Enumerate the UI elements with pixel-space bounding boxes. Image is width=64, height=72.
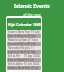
staticText: Day of Ashura [8, 34, 27, 38]
staticText: 27 Sept 2023 [28, 38, 40, 42]
staticText: Islamic Events [0, 3, 64, 10]
staticText: Day of Arafah [8, 58, 26, 62]
staticText: 07 Jul 2024 [31, 66, 40, 70]
staticText: 28 July 2023 [27, 34, 40, 38]
button[interactable]: Day of Arafah [7, 58, 41, 62]
button[interactable]: Isra and Mi'raj [7, 42, 41, 46]
staticText: Mawlid al-Nabi [8, 38, 28, 42]
staticText: 06 Apr 2024 [27, 50, 40, 54]
staticText: 19 July 2023 [31, 30, 40, 34]
button[interactable]: Laylat al-Qadr [7, 50, 41, 54]
staticText: Islamic New Year [8, 66, 31, 70]
staticText: Laylat al-Qadr [8, 50, 27, 54]
staticText: Hijri Calendar 1445 [8, 22, 41, 27]
staticText: 15 Jun 2024 [26, 58, 40, 62]
button[interactable]: Mawlid al-Nabi [7, 38, 41, 42]
button[interactable]: Islamic New Year [7, 66, 41, 70]
button[interactable]: Ramadan Begins [7, 46, 41, 50]
staticText: Islamic New Year [8, 30, 31, 34]
button[interactable]: Islamic New Year [7, 30, 41, 34]
staticText: 11 Mar 2024 [31, 46, 40, 50]
staticText: 16 Jun 2024 [24, 62, 40, 66]
button[interactable]: Hijri Calendar 1445 [7, 18, 41, 30]
button[interactable]: Eid al-Adha [7, 62, 41, 66]
staticText: Isra and Mi'raj [8, 42, 27, 46]
staticText: 10 Apr 2024 [24, 54, 40, 58]
staticText: of the year [0, 12, 64, 17]
staticText: 08 Feb 2024 [27, 42, 40, 46]
staticText: Eid al-Adha [8, 62, 23, 66]
button[interactable]: Eid al-Fitr [7, 54, 41, 58]
staticText: Eid al-Fitr [8, 54, 21, 58]
staticText: Ramadan Begins [8, 46, 31, 50]
button[interactable]: Day of Ashura [7, 34, 41, 38]
